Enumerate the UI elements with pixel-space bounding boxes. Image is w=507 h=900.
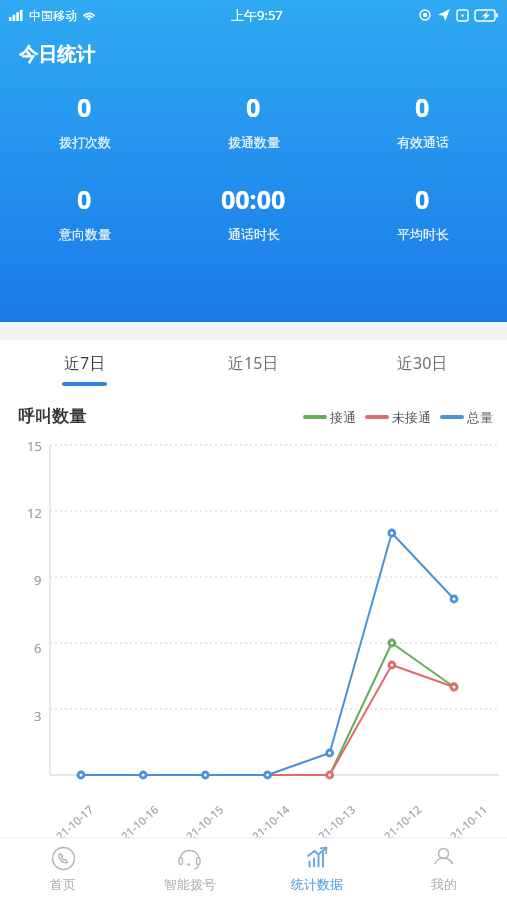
staticText: 拨打次数 bbox=[59, 134, 111, 150]
staticText: 21-10-12 bbox=[381, 802, 424, 843]
staticText: 首页 bbox=[50, 876, 76, 892]
staticText: 6 bbox=[34, 639, 42, 657]
staticText: 0 bbox=[246, 90, 261, 124]
button[interactable]: 统计数据 bbox=[253, 838, 380, 900]
staticText: 0 bbox=[415, 182, 430, 216]
button[interactable]: 近15日 bbox=[169, 340, 338, 398]
staticText: 12 bbox=[27, 504, 42, 522]
staticText: 21-10-11 bbox=[447, 802, 490, 843]
staticText: 3 bbox=[34, 707, 42, 725]
staticText: 21-10-13 bbox=[315, 802, 358, 843]
staticText: 通话时长 bbox=[228, 226, 280, 242]
staticText: 21-10-15 bbox=[183, 802, 226, 843]
staticText: 近15日 bbox=[228, 352, 279, 374]
staticText: 0 bbox=[77, 182, 92, 216]
button[interactable]: 我的 bbox=[380, 838, 507, 900]
button[interactable]: 首页 bbox=[0, 838, 126, 900]
staticText: 近30日 bbox=[397, 352, 448, 374]
staticText: 9 bbox=[34, 571, 42, 589]
staticText: 平均时长 bbox=[397, 226, 449, 242]
staticText: 上午9:57 bbox=[231, 6, 283, 24]
staticText: 呼叫数量 bbox=[18, 406, 86, 427]
staticText: 意向数量 bbox=[59, 226, 111, 242]
staticText: 总量 bbox=[467, 409, 493, 425]
button[interactable]: 智能拨号 bbox=[126, 838, 253, 900]
staticText: 21-10-16 bbox=[118, 802, 161, 843]
button[interactable]: 近7日 bbox=[0, 340, 169, 398]
staticText: 接通 bbox=[330, 409, 356, 425]
staticText: 未接通 bbox=[392, 409, 431, 425]
staticText: 21-10-14 bbox=[249, 802, 292, 843]
staticText: 拨通数量 bbox=[228, 134, 280, 150]
staticText: 15 bbox=[27, 437, 42, 455]
staticText: 21-10-17 bbox=[53, 802, 96, 843]
staticText: 中国移动 bbox=[29, 8, 77, 23]
staticText: 统计数据 bbox=[291, 876, 343, 892]
staticText: 有效通话 bbox=[397, 134, 449, 150]
staticText: 智能拨号 bbox=[164, 876, 216, 892]
button[interactable]: 近30日 bbox=[338, 340, 507, 398]
staticText: 今日统计 bbox=[19, 43, 95, 67]
staticText: 近7日 bbox=[64, 352, 106, 374]
staticText: 00:00 bbox=[221, 182, 286, 216]
staticText: 0 bbox=[77, 90, 92, 124]
staticText: 我的 bbox=[431, 876, 457, 892]
staticText: 0 bbox=[415, 90, 430, 124]
